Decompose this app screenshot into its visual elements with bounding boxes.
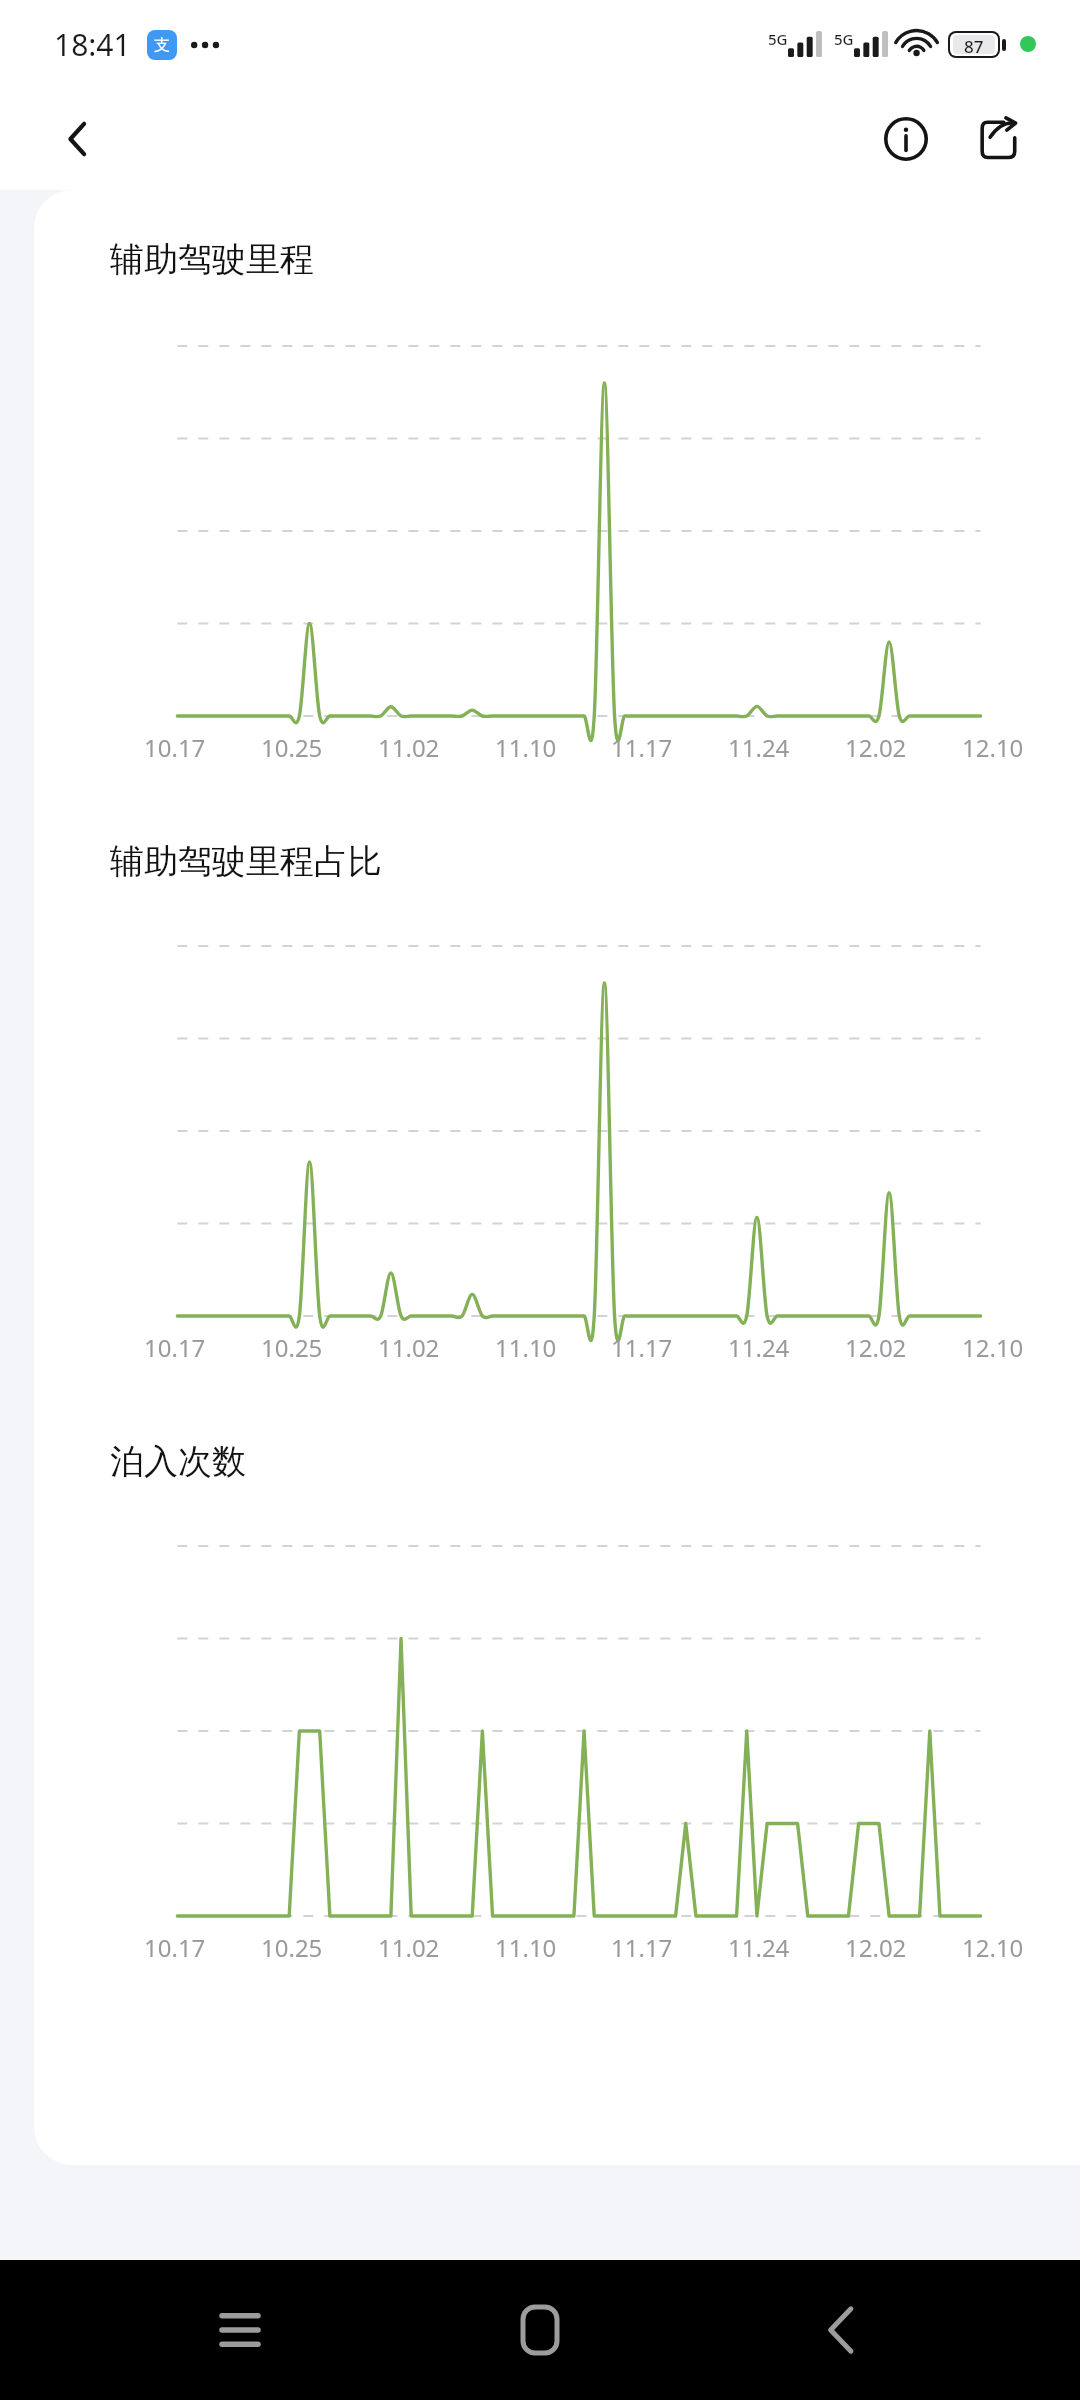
button[interactable]: Information — [868, 101, 944, 177]
staticText: 12.02 — [845, 731, 907, 764]
staticText: 11.10 — [495, 1931, 557, 1964]
staticText: 12.02 — [845, 1931, 907, 1964]
staticText: 12.10 — [962, 1931, 1024, 1964]
staticText: 11.17 — [611, 1931, 673, 1964]
staticText: 11.02 — [378, 1331, 440, 1364]
staticText: 11.17 — [611, 731, 673, 764]
staticText: 87 — [964, 35, 984, 54]
staticText: 10.17 — [144, 731, 206, 764]
staticText: 5G — [834, 29, 854, 49]
staticText: 11.24 — [728, 1331, 790, 1364]
staticText: 11.10 — [495, 731, 557, 764]
staticText: 12.02 — [845, 1331, 907, 1364]
button[interactable]: Back — [780, 2270, 900, 2390]
staticText: 12.10 — [962, 1331, 1024, 1364]
staticText: 10.25 — [261, 731, 323, 764]
staticText: 10.25 — [261, 1331, 323, 1364]
staticText: 支 — [154, 35, 170, 55]
staticText: 11.24 — [728, 731, 790, 764]
staticText: 11.02 — [378, 1931, 440, 1964]
staticText: 11.10 — [495, 1331, 557, 1364]
staticText: 辅助驾驶里程占比 — [110, 840, 382, 883]
staticText: 11.24 — [728, 1931, 790, 1964]
button[interactable]: Back — [40, 101, 116, 177]
staticText: 5G — [768, 29, 788, 49]
staticText: 10.17 — [144, 1931, 206, 1964]
button[interactable]: Share — [960, 101, 1036, 177]
staticText: 10.17 — [144, 1331, 206, 1364]
staticText: 11.02 — [378, 731, 440, 764]
staticText: 泊入次数 — [110, 1440, 246, 1483]
button[interactable]: Recent apps — [180, 2270, 300, 2390]
button[interactable]: Home — [480, 2270, 600, 2390]
staticText: 18:41 — [54, 24, 131, 65]
staticText: 12.10 — [962, 731, 1024, 764]
staticText: 11.17 — [611, 1331, 673, 1364]
staticText: 10.25 — [261, 1931, 323, 1964]
staticText: 辅助驾驶里程 — [110, 238, 314, 281]
